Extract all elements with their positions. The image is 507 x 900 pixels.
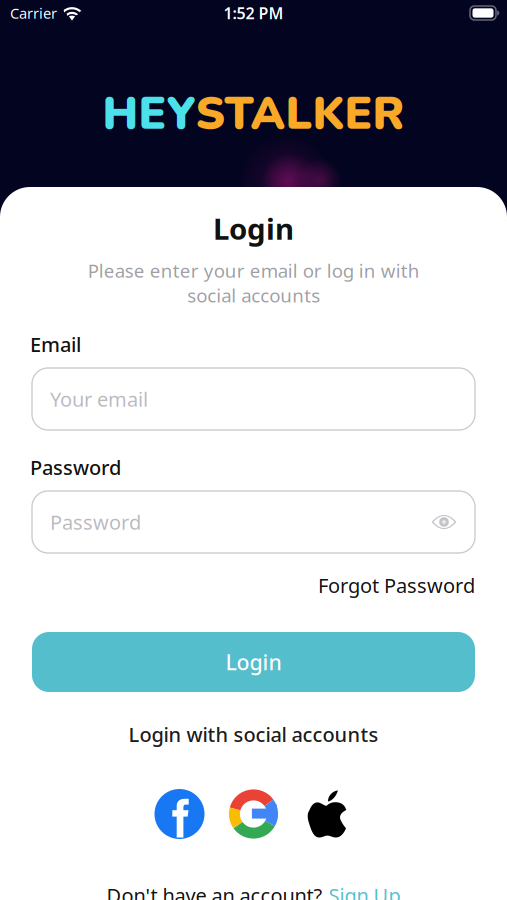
staticText: Please enter your email or log in with s… — [87, 258, 419, 308]
button[interactable]: Continue with Apple — [302, 789, 352, 839]
button[interactable]: Sign Up — [328, 882, 400, 900]
staticText: Sign Up — [328, 882, 400, 900]
button[interactable]: Forgot Password — [32, 572, 475, 599]
staticText: Login — [225, 648, 281, 676]
staticText: Don't have an account? — [106, 882, 322, 900]
staticText: Carrier — [10, 3, 57, 23]
staticText: HEY — [102, 83, 195, 145]
staticText: Your email — [50, 386, 148, 412]
staticText: 1:52 PM — [223, 2, 283, 24]
button[interactable]: Continue with Google — [228, 789, 278, 839]
button[interactable]: Login — [32, 632, 475, 692]
staticText: Login with social accounts — [128, 721, 378, 748]
staticText: STALKER — [195, 83, 404, 145]
staticText: Forgot Password — [318, 572, 475, 599]
button[interactable]: Your email — [32, 368, 475, 430]
staticText: Login — [213, 209, 294, 248]
button[interactable]: Continue with Facebook — [154, 789, 204, 839]
staticText: Password — [50, 509, 141, 535]
button[interactable]: Password — [32, 491, 475, 553]
staticText: Email — [30, 331, 81, 358]
staticText: Password — [30, 454, 121, 481]
